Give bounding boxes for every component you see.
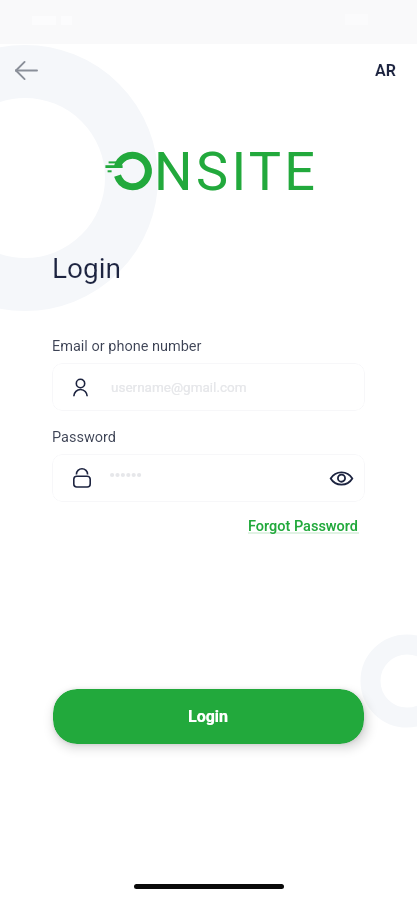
staticText: Login bbox=[52, 252, 122, 285]
button[interactable]: AR bbox=[369, 55, 402, 86]
button[interactable]: Back bbox=[3, 47, 49, 93]
staticText: username@gmail.com bbox=[111, 379, 247, 395]
button[interactable]: Show password bbox=[52, 454, 365, 502]
staticText: Forgot Password bbox=[248, 518, 359, 535]
button[interactable]: Login bbox=[53, 689, 364, 744]
staticText: Password bbox=[52, 429, 117, 446]
button[interactable]: Forgot Password bbox=[248, 518, 359, 535]
staticText: Login bbox=[188, 707, 229, 726]
button[interactable]: username@gmail.com bbox=[52, 363, 365, 411]
staticText: NSITE bbox=[154, 140, 319, 203]
staticText: Email or phone number bbox=[52, 338, 202, 355]
button[interactable]: Show password bbox=[328, 465, 354, 491]
staticText: AR bbox=[375, 61, 396, 80]
